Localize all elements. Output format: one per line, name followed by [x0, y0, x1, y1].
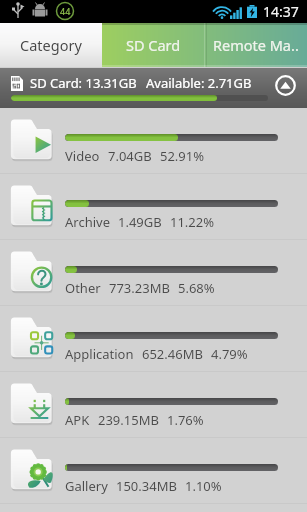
- staticText: Other: [65, 279, 101, 297]
- button[interactable]: Unmount SD card: [275, 75, 296, 96]
- staticText: 52.91%: [160, 147, 205, 165]
- button[interactable]: Gallery: [0, 438, 307, 504]
- staticText: Gallery: [65, 477, 108, 495]
- staticText: Remote Ma..: [213, 35, 299, 55]
- staticText: Application: [65, 345, 134, 363]
- button[interactable]: APK: [0, 372, 307, 438]
- staticText: 7.04GB: [108, 147, 152, 165]
- staticText: Available: 2.71GB: [146, 74, 252, 92]
- staticText: Category: [20, 35, 82, 55]
- staticText: SD Card: 13.31GB: [30, 74, 137, 92]
- staticText: 1.76%: [167, 411, 204, 429]
- button[interactable]: Remote Ma..: [205, 23, 307, 67]
- button[interactable]: Application: [0, 306, 307, 372]
- staticText: Archive: [65, 213, 110, 231]
- staticText: 652.46MB: [142, 345, 203, 363]
- staticText: Video: [65, 147, 100, 165]
- staticText: 1.10%: [185, 477, 222, 495]
- staticText: 4.79%: [211, 345, 248, 363]
- staticText: 150.34MB: [116, 477, 177, 495]
- button[interactable]: SD Card: [102, 23, 205, 67]
- button[interactable]: Video: [0, 108, 307, 174]
- staticText: APK: [65, 411, 90, 429]
- staticText: 5.68%: [178, 279, 215, 297]
- staticText: 14:37: [263, 2, 299, 21]
- staticText: 239.15MB: [98, 411, 159, 429]
- staticText: SD Card: [126, 35, 181, 55]
- button[interactable]: Archive: [0, 174, 307, 240]
- staticText: 773.23MB: [109, 279, 170, 297]
- staticText: 1.49GB: [118, 213, 162, 231]
- staticText: 11.22%: [170, 213, 215, 231]
- staticText: 44: [60, 5, 71, 17]
- button[interactable]: Other: [0, 240, 307, 306]
- button[interactable]: Category: [0, 23, 102, 67]
